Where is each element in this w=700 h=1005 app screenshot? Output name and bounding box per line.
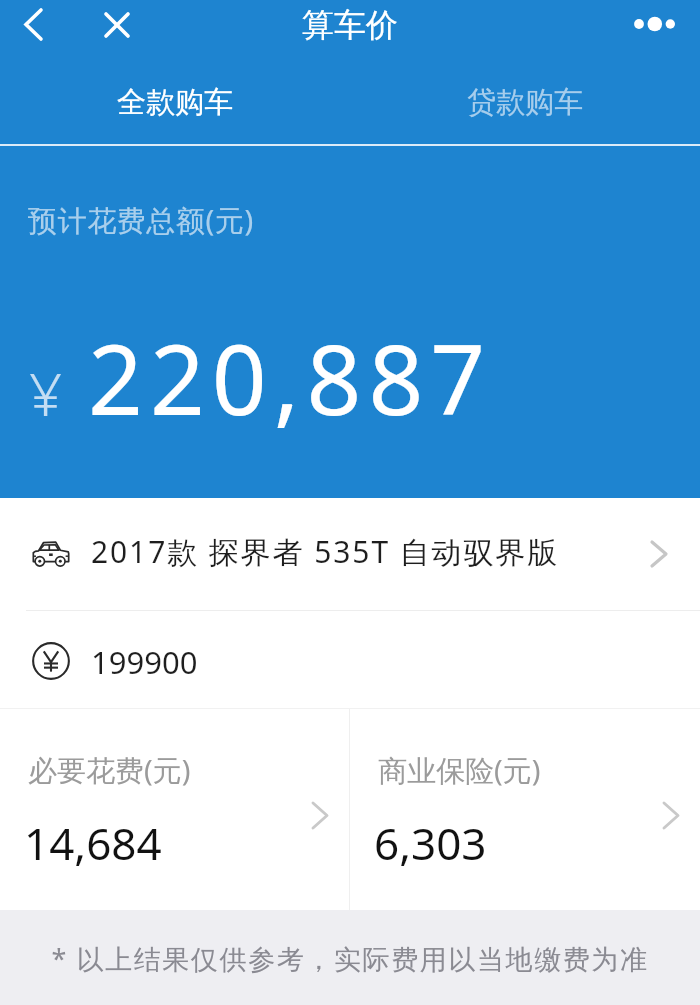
staticText: 必要花费(元) <box>28 750 191 790</box>
button[interactable]: Close <box>92 0 141 49</box>
button[interactable]: Back <box>9 0 58 49</box>
staticText: 6,303 <box>374 813 487 873</box>
button[interactable]: 贷款购车 <box>350 72 700 144</box>
button[interactable]: 商业保险(元) <box>350 709 700 910</box>
button[interactable]: 全款购车 <box>0 72 350 144</box>
button[interactable]: 199900 <box>0 611 700 708</box>
staticText: 全款购车 <box>117 84 233 121</box>
staticText: 商业保险(元) <box>378 750 541 790</box>
staticText: 算车价 <box>302 5 398 45</box>
staticText: 预计花费总额(元) <box>28 200 254 240</box>
button[interactable]: 必要花费(元) <box>0 709 349 910</box>
staticText: 贷款购车 <box>467 84 583 121</box>
staticText: ¥ <box>29 354 63 433</box>
staticText: 199900 <box>91 641 198 683</box>
staticText: 2017款 探界者 535T 自动驭界版 <box>91 531 560 572</box>
staticText: 14,684 <box>24 813 162 873</box>
button[interactable]: More options <box>626 0 676 48</box>
staticText: 220,887 <box>88 312 493 443</box>
staticText: * 以上结果仅供参考，实际费用以当地缴费为准 <box>51 940 649 977</box>
button[interactable]: 2017款 探界者 535T 自动驭界版 <box>0 498 700 610</box>
